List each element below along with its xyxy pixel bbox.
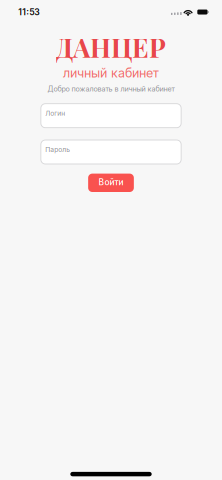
staticText: Войти (98, 177, 123, 187)
staticText: 11:53 (18, 7, 40, 17)
button[interactable]: Войти (88, 174, 134, 192)
staticText: Пароль (45, 146, 70, 154)
staticText: Добро пожаловать в личный кабинет (47, 85, 174, 93)
button[interactable]: Логин (41, 104, 181, 128)
staticText: Логин (45, 109, 65, 117)
staticText: ДАНЦЕР (56, 29, 166, 64)
staticText: личный кабинет (63, 65, 159, 81)
button[interactable]: Пароль (41, 140, 181, 164)
